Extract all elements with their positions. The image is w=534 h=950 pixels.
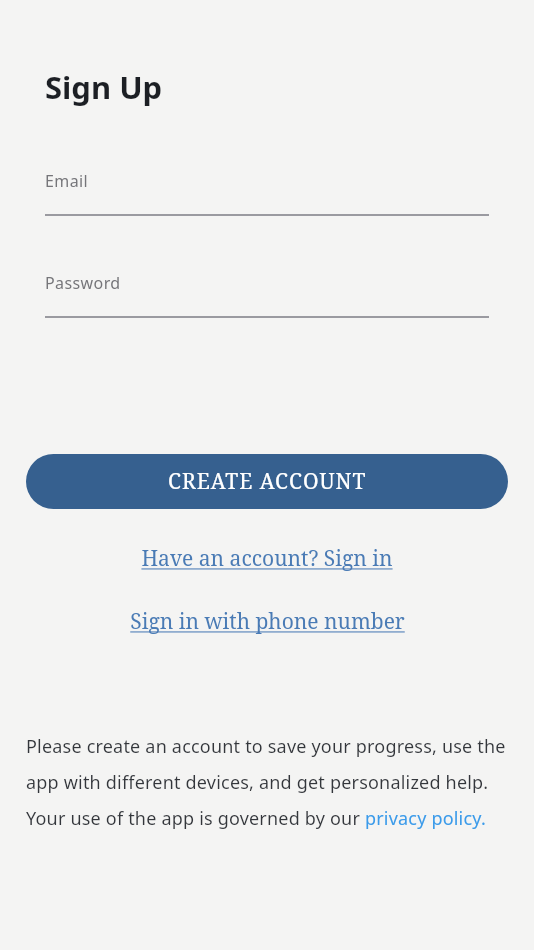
staticText: CREATE ACCOUNT	[168, 467, 367, 496]
staticText: Have an account? Sign in	[141, 544, 393, 573]
staticText: Sign Up	[45, 66, 163, 108]
staticText: Email	[45, 170, 89, 192]
button[interactable]: Have an account? Sign in	[0, 544, 534, 573]
staticText: Password	[45, 272, 121, 294]
button[interactable]: Please create an account to save your pr…	[26, 734, 508, 831]
button[interactable]: Password	[45, 272, 489, 318]
button[interactable]: Email	[45, 170, 489, 216]
staticText: Please create an account to save your pr…	[26, 734, 508, 831]
button[interactable]: Sign in with phone number	[0, 607, 534, 636]
staticText: Sign in with phone number	[130, 607, 405, 636]
button[interactable]: CREATE ACCOUNT	[26, 454, 508, 509]
